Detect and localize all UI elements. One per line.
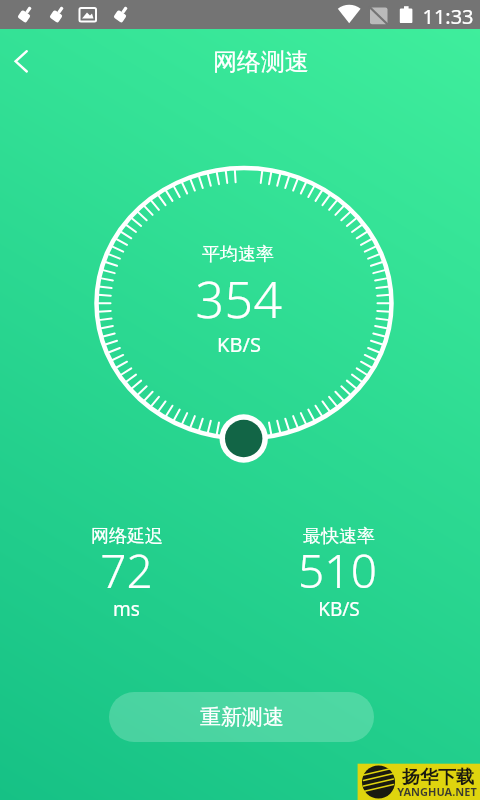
button[interactable]: 重新测速 — [109, 692, 374, 742]
staticText: 网络延迟 — [91, 525, 163, 548]
staticText: 最快速率 — [303, 525, 375, 548]
staticText: KB/S — [217, 331, 261, 357]
staticText: 72 — [100, 539, 153, 599]
staticText: 11:33 — [422, 3, 474, 27]
button[interactable] — [0, 35, 48, 85]
staticText: 510 — [298, 539, 377, 599]
staticText: 网络测速 — [213, 47, 309, 77]
staticText: 平均速率 — [202, 243, 274, 266]
staticText: YANGHUA.NET — [397, 784, 477, 798]
staticText: 重新测速 — [200, 704, 284, 730]
staticText: KB/S — [318, 596, 360, 622]
staticText: ms — [113, 596, 140, 622]
staticText: 354 — [195, 265, 283, 329]
staticText: 扬华下载 — [402, 766, 474, 788]
